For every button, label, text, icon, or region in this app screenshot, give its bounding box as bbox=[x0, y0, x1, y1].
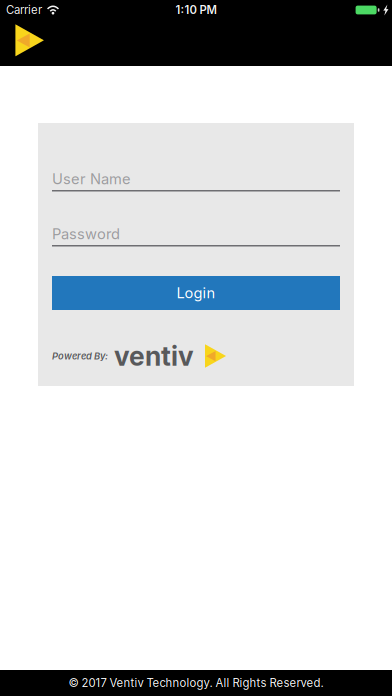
button[interactable]: User Name bbox=[52, 168, 340, 191]
staticText: 1:10 PM bbox=[175, 3, 216, 17]
staticText: © 2017 Ventiv Technology. All Rights Res… bbox=[68, 676, 323, 690]
button[interactable]: Login bbox=[52, 276, 340, 310]
staticText: Carrier bbox=[6, 3, 42, 17]
staticText: ventiv bbox=[114, 340, 194, 372]
staticText: Login bbox=[176, 284, 215, 302]
staticText: Powered By: bbox=[52, 350, 108, 362]
staticText: User Name bbox=[52, 170, 131, 188]
button[interactable]: Password bbox=[52, 223, 340, 246]
staticText: Password bbox=[52, 225, 120, 243]
button[interactable]: Ventiv bbox=[0, 20, 44, 66]
